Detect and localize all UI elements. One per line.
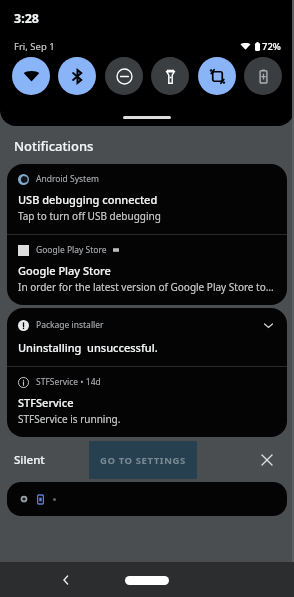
staticText: GO TO SETTINGS <box>100 454 186 467</box>
button[interactable]: Package installer <box>7 308 287 366</box>
button[interactable] <box>7 482 287 516</box>
button[interactable]: Flashlight <box>151 57 189 95</box>
staticText: Uninstalling unsuccessful. <box>18 340 158 355</box>
staticText: Notifications <box>14 137 94 155</box>
staticText: STFService • 14d <box>36 376 101 388</box>
staticText: Google Play Store <box>18 263 111 278</box>
button[interactable]: GO TO SETTINGS <box>89 441 197 479</box>
button[interactable]: Auto-rotate <box>198 57 236 95</box>
staticText: Google Play Store <box>36 244 107 256</box>
button[interactable]: Battery saver <box>244 57 282 95</box>
staticText: USB debugging connected <box>18 192 158 207</box>
button[interactable]: Wi-Fi <box>12 57 50 95</box>
button[interactable]: Bluetooth <box>58 57 96 95</box>
staticText: Silent <box>14 452 45 468</box>
staticText: Fri, Sep 1 <box>14 40 55 53</box>
staticText: 3:28 <box>14 10 39 27</box>
staticText: In order for the latest version of Googl… <box>18 280 276 294</box>
staticText: Android System <box>36 173 99 185</box>
button[interactable]: Back <box>55 569 77 591</box>
button[interactable]: Do not disturb <box>105 57 143 95</box>
button[interactable]: Google Play Store <box>7 235 287 305</box>
staticText: Package installer <box>36 319 104 331</box>
staticText: Tap to turn off USB debugging <box>18 209 161 223</box>
button[interactable]: Home <box>125 576 169 585</box>
staticText: 72% <box>262 40 281 53</box>
staticText: STFService <box>18 395 74 410</box>
button[interactable]: Clear all <box>257 450 277 470</box>
staticText: STFService is running. <box>18 412 121 426</box>
button[interactable]: Expand <box>260 317 276 333</box>
button[interactable]: STFService • 14d <box>7 367 287 437</box>
button[interactable]: Android System <box>7 164 287 234</box>
